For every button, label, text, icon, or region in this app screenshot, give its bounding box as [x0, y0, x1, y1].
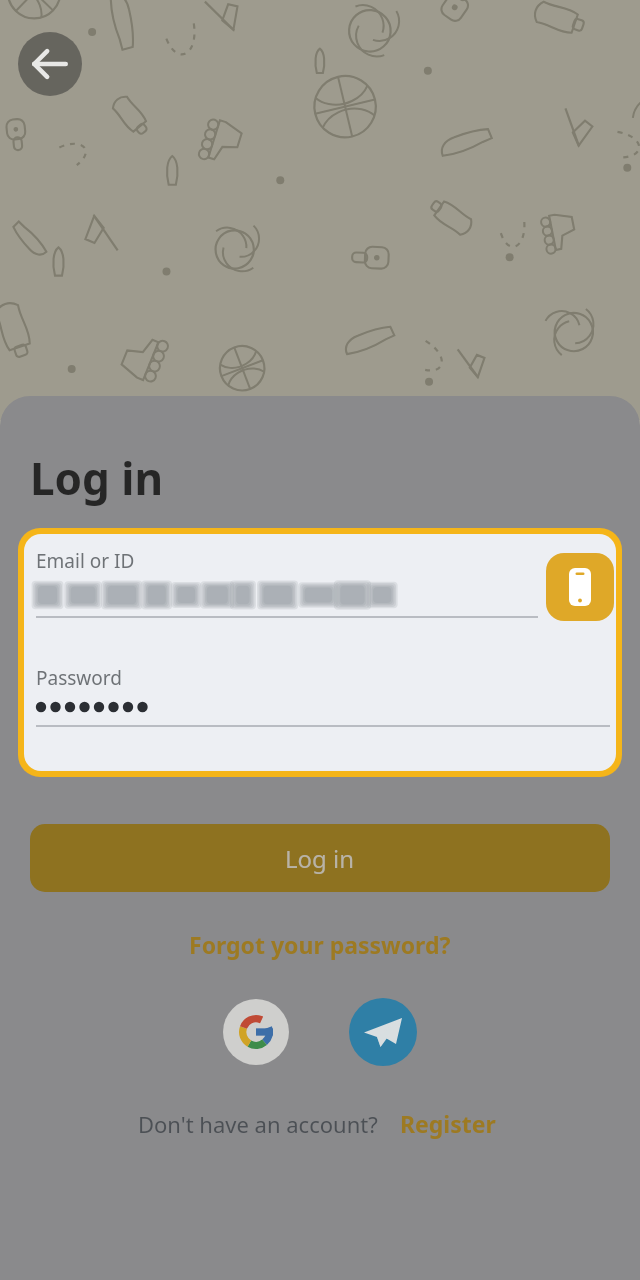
staticText: Log in	[285, 842, 355, 875]
button[interactable]: Sign in with Telegram	[349, 998, 417, 1066]
staticText: Password	[36, 665, 122, 691]
button[interactable]: Password	[36, 665, 610, 727]
staticText: Log in	[30, 448, 164, 508]
button[interactable]: Sign in with Google	[223, 999, 289, 1065]
button[interactable]: Back	[18, 32, 82, 96]
button[interactable]: Log in with phone number	[546, 553, 614, 621]
staticText: Register	[400, 1108, 496, 1139]
staticText: Forgot your password?	[189, 929, 451, 960]
button[interactable]: Register	[394, 1104, 502, 1143]
button[interactable]: Forgot your password?	[179, 923, 461, 966]
staticText: Don't have an account?	[138, 1109, 378, 1139]
button[interactable]: Email or ID	[36, 548, 538, 618]
staticText: Email or ID	[36, 548, 135, 574]
button[interactable]: Log in	[30, 824, 610, 892]
